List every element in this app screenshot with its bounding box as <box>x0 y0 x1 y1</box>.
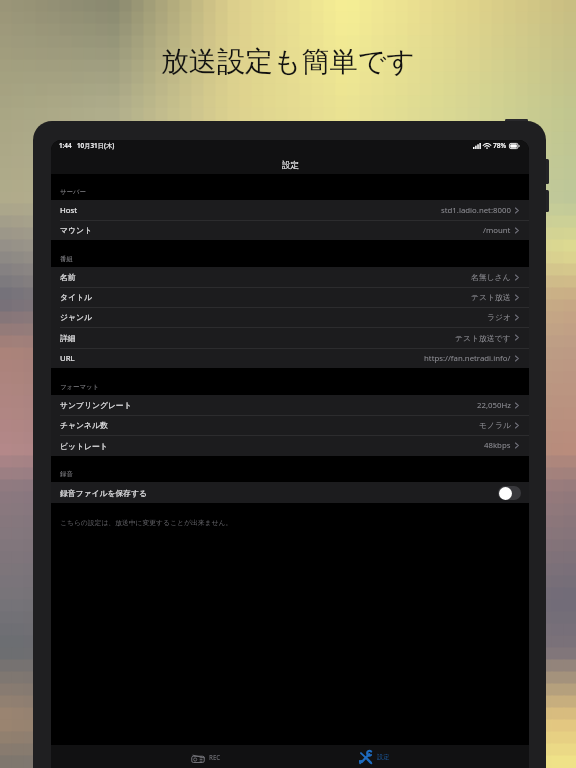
staticText: std1.ladio.net:8000 <box>441 205 511 216</box>
other: REC <box>191 750 205 763</box>
button[interactable]: 詳細 <box>51 327 529 348</box>
staticText: テスト放送 <box>471 292 511 302</box>
button[interactable]: ジャンル <box>51 307 529 327</box>
staticText: 48kbps <box>484 440 511 451</box>
staticText: タイトル <box>60 292 92 302</box>
staticText: REC <box>209 753 221 761</box>
staticText: サーバー <box>60 188 86 196</box>
button[interactable]: URL <box>51 348 529 368</box>
staticText: Host <box>60 205 78 216</box>
staticText: チャンネル数 <box>60 420 108 430</box>
button[interactable]: タイトル <box>51 287 529 307</box>
staticText: ジャンル <box>60 312 92 322</box>
button[interactable]: ビットレート <box>51 435 529 456</box>
staticText: 番組 <box>60 255 73 263</box>
button[interactable]: 名前 <box>51 267 529 287</box>
staticText: マウント <box>60 225 92 235</box>
staticText: 録音ファイルを保存する <box>60 488 148 498</box>
staticText: 名前 <box>60 272 76 282</box>
button[interactable]: マウント <box>51 220 529 240</box>
staticText: サンプリングレート <box>60 400 132 410</box>
staticText: ラジオ <box>487 312 511 322</box>
button[interactable]: REC <box>181 747 231 766</box>
button[interactable]: Host <box>51 200 529 220</box>
staticText: モノラル <box>479 420 511 430</box>
staticText: 1:44 <box>59 141 72 150</box>
staticText: 10月31日(木) <box>77 141 115 150</box>
staticText: 設定 <box>377 753 390 761</box>
staticText: URL <box>60 353 75 364</box>
staticText: ビットレート <box>60 441 108 451</box>
staticText: テスト放送です <box>455 333 511 343</box>
staticText: 設定 <box>282 160 299 171</box>
other: 設定 <box>359 750 373 764</box>
staticText: 78% <box>493 141 507 150</box>
button[interactable]: 設定 <box>349 747 400 767</box>
button[interactable]: サンプリングレート <box>51 395 529 415</box>
staticText: こちらの設定は、放送中に変更することが出来ません。 <box>60 518 233 527</box>
staticText: /mount <box>483 225 511 236</box>
staticText: 詳細 <box>60 333 76 343</box>
button[interactable]: 録音ファイルを保存する <box>51 482 529 503</box>
staticText: 名無しさん <box>471 272 511 282</box>
staticText: 録音 <box>60 470 73 478</box>
staticText: 放送設定も簡単です <box>0 44 576 79</box>
staticText: https://fan.netradi.info/ <box>424 353 511 364</box>
staticText: 22,050Hz <box>477 400 511 411</box>
staticText: フォーマット <box>60 383 100 391</box>
button[interactable]: チャンネル数 <box>51 415 529 435</box>
